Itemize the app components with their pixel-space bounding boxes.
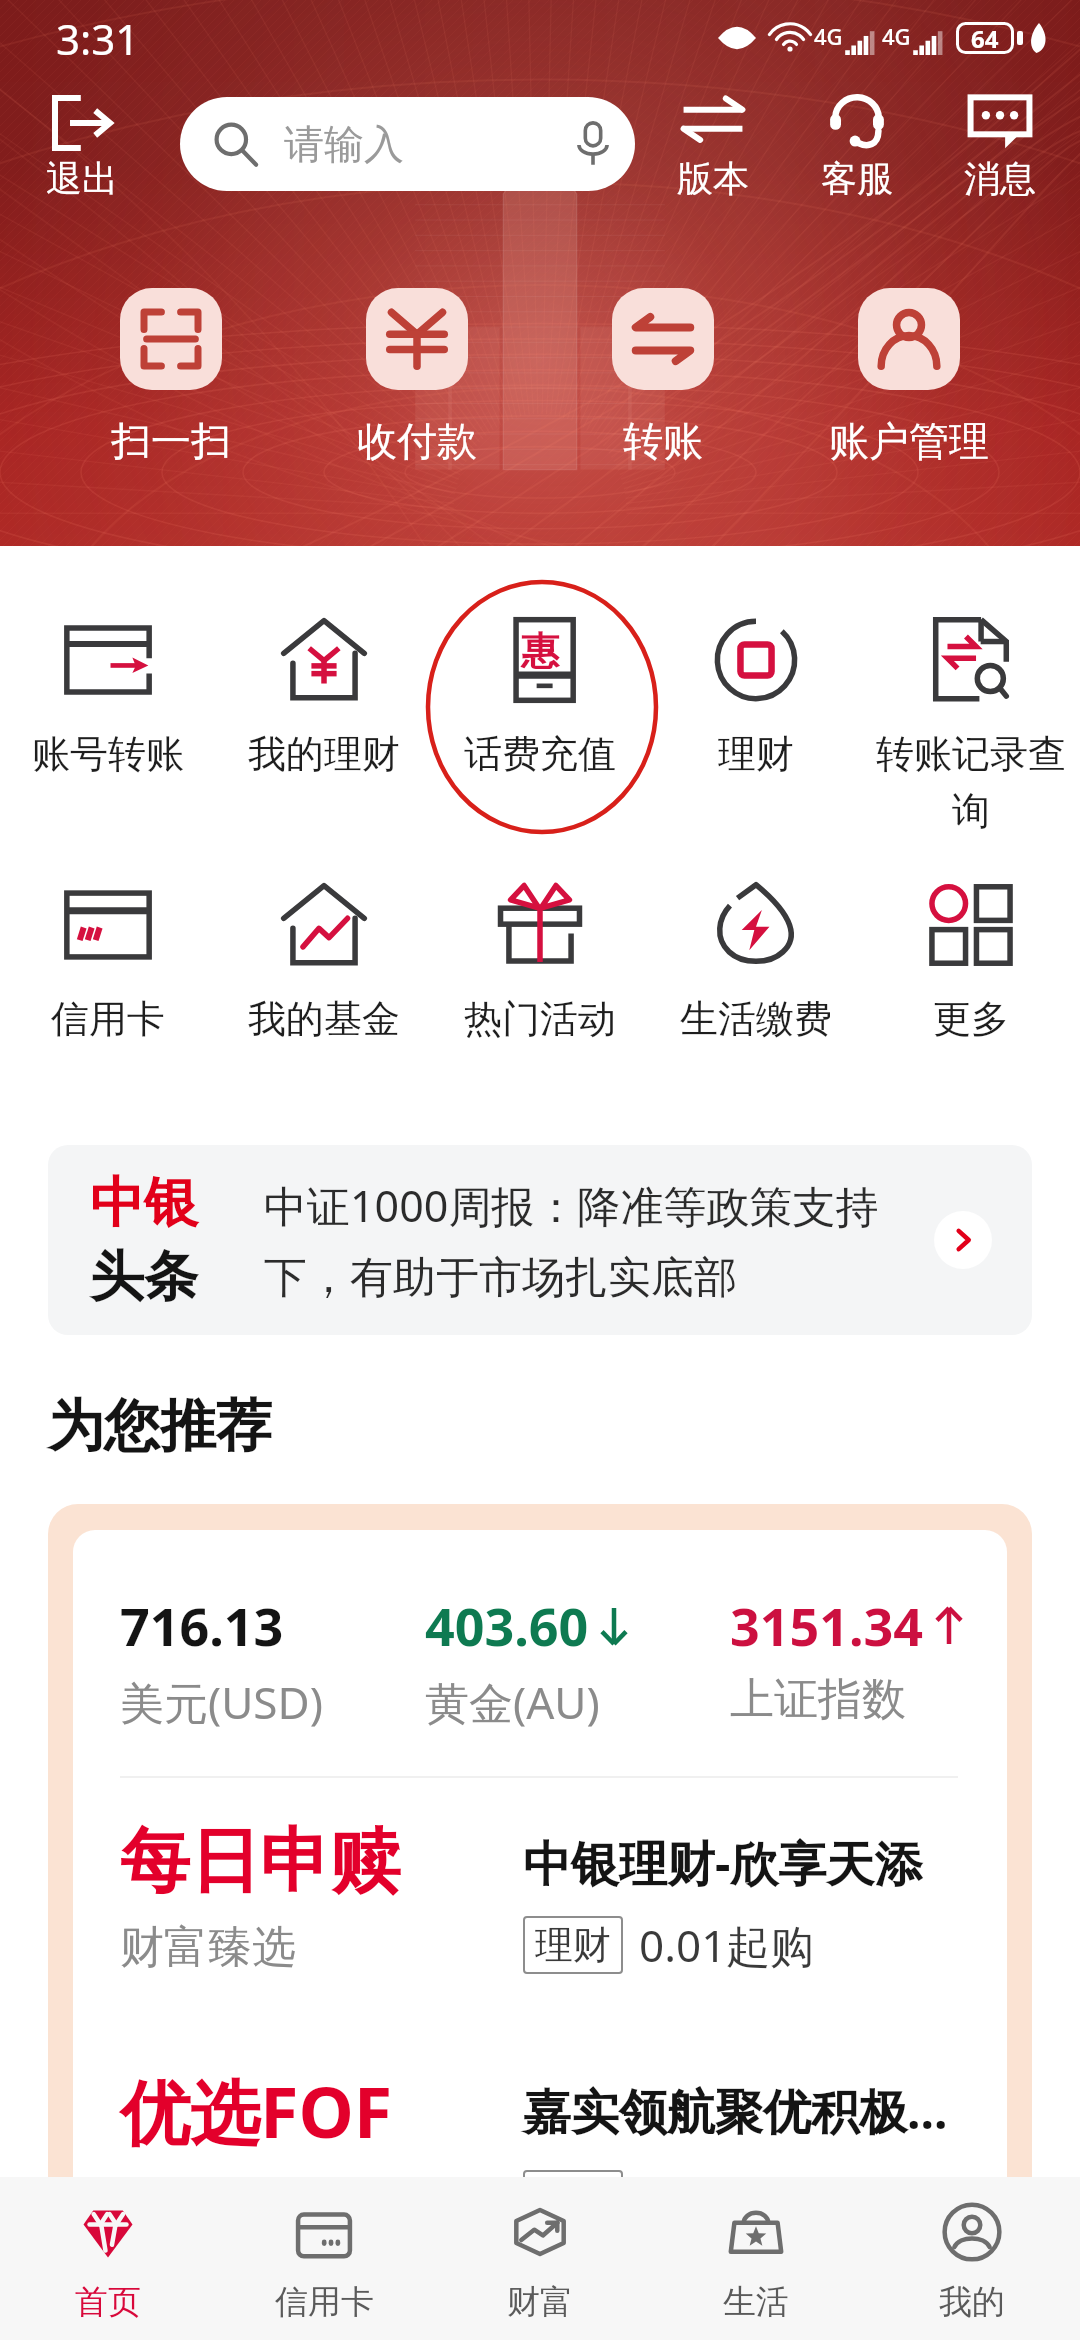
staticText: 上证指数: [730, 1672, 906, 1727]
staticText: 热门活动: [464, 995, 616, 1043]
staticText: 美元(USD): [120, 1672, 323, 1732]
button[interactable]: 请输入: [180, 97, 635, 191]
staticText: 3151.34: [730, 1590, 924, 1661]
staticText: 首页: [75, 2281, 141, 2323]
button[interactable]: 惠: [435, 618, 645, 778]
button[interactable]: 账户管理: [789, 288, 1029, 466]
button[interactable]: 我的: [864, 2177, 1080, 2340]
staticText: 生活缴费: [680, 995, 832, 1043]
staticText: 我的基金: [248, 995, 400, 1043]
staticText: 生活: [723, 2281, 789, 2323]
button[interactable]: 账号转账: [3, 618, 213, 778]
button[interactable]: 热门活动: [435, 883, 645, 1043]
staticText: 中银理财-欣享天添: [523, 1830, 923, 1896]
staticText: 账号转账: [32, 730, 184, 778]
staticText: 中证1000周报：降准等政策支持下，有助于市场扎实底部: [264, 1176, 904, 1305]
staticText: 退出: [46, 156, 118, 201]
staticText: 转账记录查询: [866, 730, 1076, 835]
staticText: 为您推荐: [48, 1391, 272, 1462]
button[interactable]: 更多: [866, 883, 1076, 1043]
button[interactable]: 更多: [934, 1211, 992, 1269]
staticText: 信用卡: [51, 995, 165, 1043]
button[interactable]: 生活缴费: [651, 883, 861, 1043]
staticText: 财富: [507, 2281, 573, 2323]
button[interactable]: 退出: [28, 96, 136, 201]
staticText: 优选FOF: [120, 2063, 393, 2159]
staticText: 版本: [677, 156, 749, 201]
button[interactable]: 我的基金: [219, 883, 429, 1043]
staticText: 我的理财: [248, 730, 400, 778]
button[interactable]: 信用卡: [216, 2177, 432, 2340]
staticText: 嘉实领航聚优积极...: [523, 2078, 948, 2144]
button[interactable]: 转账: [543, 288, 783, 466]
staticText: 黄金(AU): [425, 1672, 600, 1732]
staticText: 消息: [964, 156, 1036, 201]
button[interactable]: 我的理财: [219, 618, 429, 778]
button[interactable]: 版本: [651, 94, 775, 201]
staticText: 惠: [521, 627, 559, 675]
button[interactable]: 理财: [651, 618, 861, 778]
staticText: 收付款: [357, 416, 477, 466]
staticText: 理财: [535, 1921, 611, 1969]
staticText: 扫一扫: [111, 416, 231, 466]
staticText: 中银: [90, 1169, 198, 1237]
staticText: 理财: [718, 730, 794, 778]
button[interactable]: 中银: [48, 1145, 1032, 1335]
staticText: 财富臻选: [120, 1920, 296, 1975]
staticText: 账户管理: [829, 416, 989, 466]
staticText: 转账: [623, 416, 703, 466]
button[interactable]: 扫一扫: [51, 288, 291, 466]
staticText: 头条: [90, 1243, 198, 1311]
button[interactable]: 生活: [648, 2177, 864, 2340]
staticText: 更多: [933, 995, 1009, 1043]
staticText: 我的: [939, 2281, 1005, 2323]
button[interactable]: 首页: [0, 2177, 216, 2340]
staticText: 客服: [821, 156, 893, 201]
button[interactable]: 财富: [432, 2177, 648, 2340]
staticText: 716.13: [120, 1590, 284, 1661]
button[interactable]: 客服: [795, 94, 919, 201]
staticText: 每日申赎: [120, 1818, 400, 1906]
button[interactable]: 信用卡: [3, 883, 213, 1043]
staticText: 信用卡: [275, 2281, 374, 2323]
staticText: 403.60: [425, 1590, 589, 1661]
staticText: 3:31: [56, 10, 140, 67]
staticText: 4G: [814, 21, 843, 51]
button[interactable]: 转账记录查询: [866, 618, 1076, 835]
button[interactable]: 消息: [938, 94, 1062, 201]
staticText: 话费充值: [464, 730, 616, 778]
staticText: 4G: [882, 21, 911, 51]
staticText: 64: [971, 22, 999, 54]
button[interactable]: 收付款: [297, 288, 537, 466]
button[interactable]: 716.13: [73, 1530, 1007, 2177]
staticText: 0.01起购: [639, 1915, 815, 1975]
staticText: 请输入: [284, 119, 404, 169]
